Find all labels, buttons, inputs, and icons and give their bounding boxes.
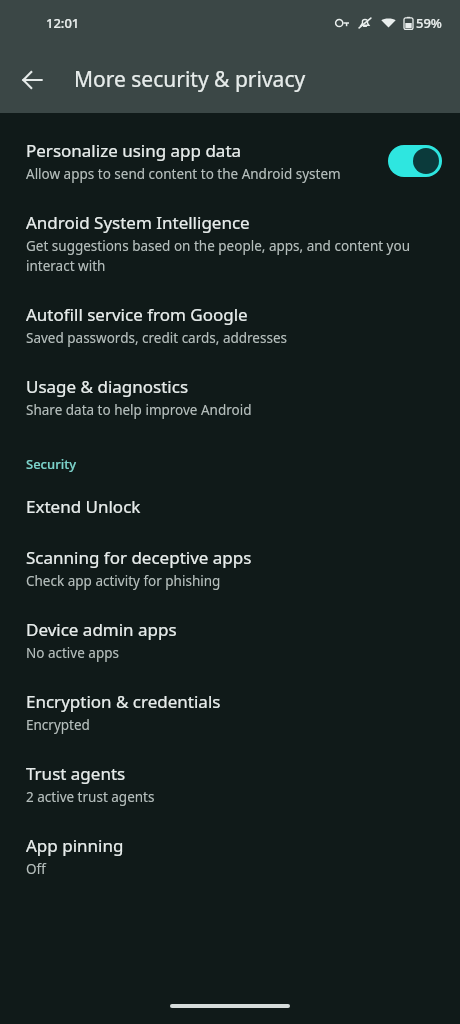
staticText: Device admin apps xyxy=(26,618,177,641)
button[interactable]: Autofill service from Google xyxy=(0,289,460,361)
staticText: Check app activity for phishing xyxy=(26,572,221,590)
staticText: More security & privacy xyxy=(74,65,306,94)
staticText: App pinning xyxy=(26,834,124,857)
button[interactable]: Scanning for deceptive apps xyxy=(0,532,460,604)
button[interactable]: Personalize using app data toggle xyxy=(388,145,442,177)
button[interactable]: Usage & diagnostics xyxy=(0,361,460,433)
staticText: Usage & diagnostics xyxy=(26,375,189,398)
staticText: Encryption & credentials xyxy=(26,690,221,713)
staticText: Encrypted xyxy=(26,716,90,734)
staticText: Get suggestions based on the people, app… xyxy=(26,237,442,275)
button[interactable]: Personalize using app data xyxy=(0,125,460,197)
staticText: Personalize using app data xyxy=(26,139,242,162)
staticText: 12:01 xyxy=(46,14,80,32)
button[interactable]: Extend Unlock xyxy=(0,481,460,532)
button[interactable]: Encryption & credentials xyxy=(0,676,460,748)
button[interactable]: App pinning xyxy=(0,820,460,892)
staticText: Trust agents xyxy=(26,762,126,785)
staticText: No active apps xyxy=(26,644,119,662)
staticText: Extend Unlock xyxy=(26,495,141,518)
staticText: 2 active trust agents xyxy=(26,788,155,806)
staticText: 59% xyxy=(416,14,442,32)
staticText: Android System Intelligence xyxy=(26,211,250,234)
staticText: Off xyxy=(26,860,46,878)
staticText: Autofill service from Google xyxy=(26,303,248,326)
staticText: Security xyxy=(26,455,76,473)
staticText: Scanning for deceptive apps xyxy=(26,546,252,569)
button[interactable]: Android System Intelligence xyxy=(0,197,460,289)
button[interactable]: Trust agents xyxy=(0,748,460,820)
staticText: Allow apps to send content to the Androi… xyxy=(26,165,341,183)
button[interactable]: Device admin apps xyxy=(0,604,460,676)
staticText: Share data to help improve Android xyxy=(26,401,252,419)
button[interactable]: Back xyxy=(9,56,57,104)
staticText: Saved passwords, credit cards, addresses xyxy=(26,329,287,347)
